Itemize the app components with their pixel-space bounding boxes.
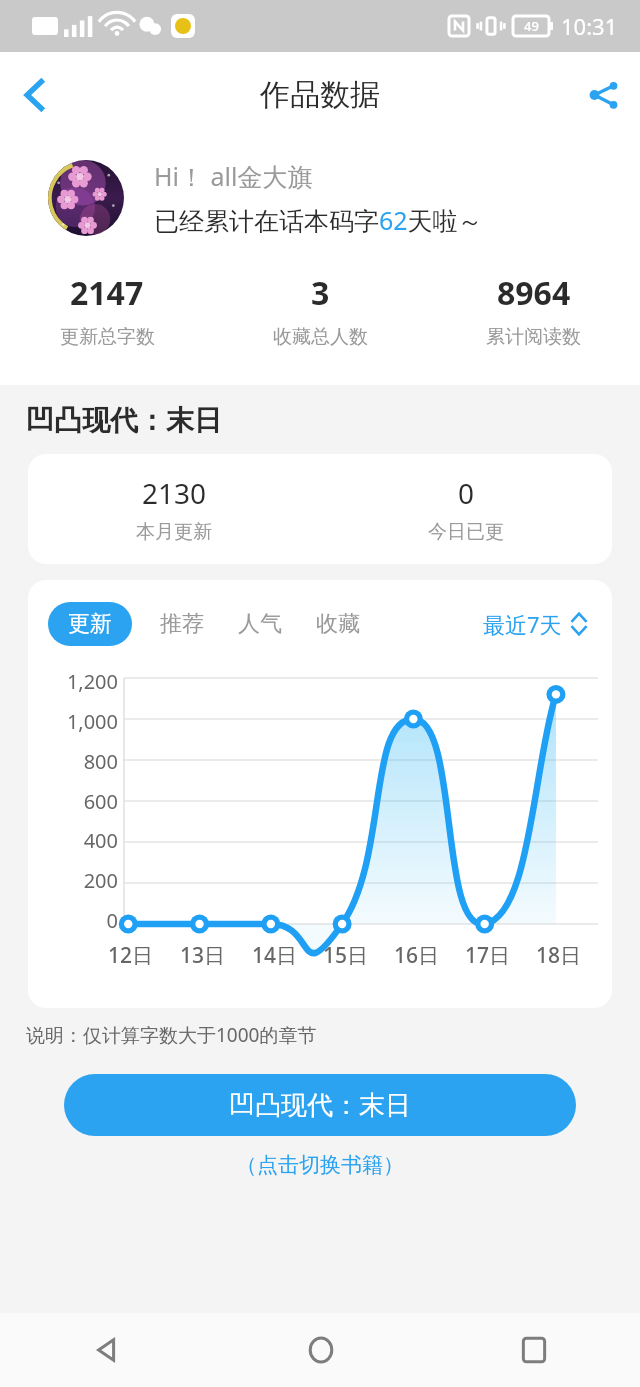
staticText: 作品数据: [260, 76, 380, 114]
staticText: 1,000: [66, 708, 118, 735]
staticText: 1,200: [66, 668, 118, 695]
button[interactable]: 2130: [28, 474, 320, 544]
staticText: 2130: [142, 474, 207, 512]
staticText: 收藏: [316, 610, 360, 638]
staticText: 10:31: [561, 11, 618, 41]
staticText: 0: [106, 907, 118, 934]
staticText: 16日: [394, 941, 440, 970]
button[interactable]: 0: [320, 474, 612, 544]
button[interactable]: 更新: [48, 602, 132, 646]
staticText: 0: [458, 474, 475, 512]
staticText: 14日: [252, 941, 298, 970]
staticText: 已经累计在话本码字62天啦～: [154, 203, 483, 237]
staticText: 8964: [497, 271, 571, 315]
staticText: 收藏总人数: [273, 325, 368, 349]
staticText: 3: [311, 271, 330, 315]
staticText: 17日: [465, 941, 511, 970]
button[interactable]: 最近7天: [479, 603, 592, 645]
staticText: 说明：仅计算字数大于1000的章节: [26, 1022, 317, 1048]
staticText: 49: [524, 17, 539, 35]
staticText: 400: [83, 827, 118, 854]
staticText: 更新总字数: [60, 325, 155, 349]
button[interactable]: Recent apps: [427, 1313, 640, 1387]
staticText: 200: [83, 867, 118, 894]
button[interactable]: 2147: [0, 271, 214, 349]
staticText: 本月更新: [136, 520, 212, 544]
staticText: 15日: [323, 941, 369, 970]
staticText: 2147: [70, 271, 144, 315]
staticText: 18日: [536, 941, 582, 970]
button[interactable]: Back: [0, 59, 72, 131]
staticText: 累计阅读数: [486, 325, 581, 349]
staticText: 800: [83, 748, 118, 775]
staticText: Hi！ all金大旗: [154, 159, 313, 193]
button[interactable]: 凹凸现代：末日: [64, 1074, 576, 1136]
staticText: 今日已更: [428, 520, 504, 544]
staticText: 更新: [68, 610, 112, 638]
staticText: 600: [83, 788, 118, 815]
button[interactable]: 推荐: [154, 602, 210, 646]
staticText: 最近7天: [483, 609, 562, 639]
staticText: 人气: [238, 610, 282, 638]
staticText: 13日: [180, 941, 226, 970]
button[interactable]: Share: [568, 59, 640, 131]
staticText: 凹凸现代：末日: [229, 1089, 411, 1122]
button[interactable]: Back: [0, 1313, 214, 1387]
staticText: （点击切换书籍）: [236, 1152, 404, 1178]
button[interactable]: Home: [214, 1313, 427, 1387]
button[interactable]: 8964: [427, 271, 640, 349]
button[interactable]: 人气: [232, 602, 288, 646]
button[interactable]: 3: [214, 271, 427, 349]
button[interactable]: Avatar: [48, 160, 124, 236]
staticText: 12日: [108, 941, 154, 970]
staticText: 凹凸现代：末日: [26, 403, 222, 438]
button[interactable]: 收藏: [310, 602, 366, 646]
button[interactable]: （点击切换书籍）: [224, 1148, 416, 1182]
staticText: 推荐: [160, 610, 204, 638]
